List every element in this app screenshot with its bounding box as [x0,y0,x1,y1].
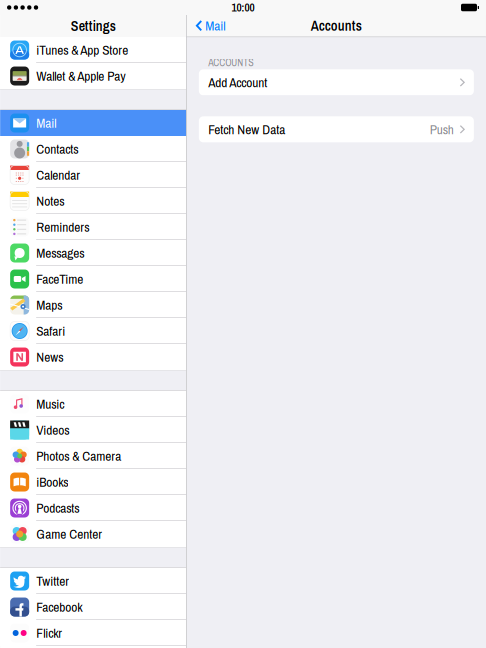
staticText: Calendar [36,166,80,184]
button[interactable]: iTunes & App Store [0,37,186,63]
button[interactable]: Wallet & Apple Pay [0,63,186,89]
staticText: Wallet & Apple Pay [36,67,125,85]
staticText: Safari [36,322,65,340]
button[interactable]: Notes [0,188,186,214]
button[interactable]: News [0,344,186,370]
button[interactable]: Photos & Camera [0,443,186,469]
button[interactable]: FaceTime [0,266,186,292]
staticText: News [36,348,63,366]
staticText: Maps [36,296,62,314]
staticText: Podcasts [36,499,79,517]
staticText: Contacts [36,140,78,158]
button[interactable]: Safari [0,318,186,344]
staticText: Add Account [208,73,267,91]
staticText: Messages [36,244,84,262]
staticText: Settings [71,17,116,35]
staticText: Facebook [36,598,82,616]
staticText: Game Center [36,525,102,543]
staticText: Notes [36,192,64,210]
staticText: Accounts [311,16,362,35]
button[interactable]: Game Center [0,521,186,547]
button[interactable]: Contacts [0,136,186,162]
button[interactable]: Twitter [0,568,186,594]
button[interactable]: Flickr [0,620,186,646]
staticText: Mail [36,114,56,132]
staticText: Twitter [36,572,69,590]
button[interactable]: Calendar [0,162,186,188]
button[interactable]: Maps [0,292,186,318]
staticText: iBooks [36,473,68,491]
staticText: Mail [205,17,225,35]
staticText: Videos [36,421,69,439]
staticText: Photos & Camera [36,447,121,465]
button[interactable]: Add Account [199,69,474,95]
button[interactable]: Fetch New Data [199,116,474,142]
staticText: Flickr [36,624,62,642]
staticText: 10:00 [231,0,254,15]
button[interactable]: Mail [0,110,186,136]
button[interactable]: Reminders [0,214,186,240]
staticText: Reminders [36,218,89,236]
button[interactable]: Podcasts [0,495,186,521]
button[interactable]: Facebook [0,594,186,620]
button[interactable]: Videos [0,417,186,443]
button[interactable]: Messages [0,240,186,266]
button[interactable]: Music [0,391,186,417]
button[interactable]: Mail [187,15,225,37]
staticText: ACCOUNTS [208,56,253,69]
staticText: iTunes & App Store [36,41,128,59]
staticText: Fetch New Data [208,120,285,138]
staticText: FaceTime [36,270,83,288]
staticText: Music [36,395,64,413]
button[interactable]: iBooks [0,469,186,495]
staticText: Push [430,120,454,138]
